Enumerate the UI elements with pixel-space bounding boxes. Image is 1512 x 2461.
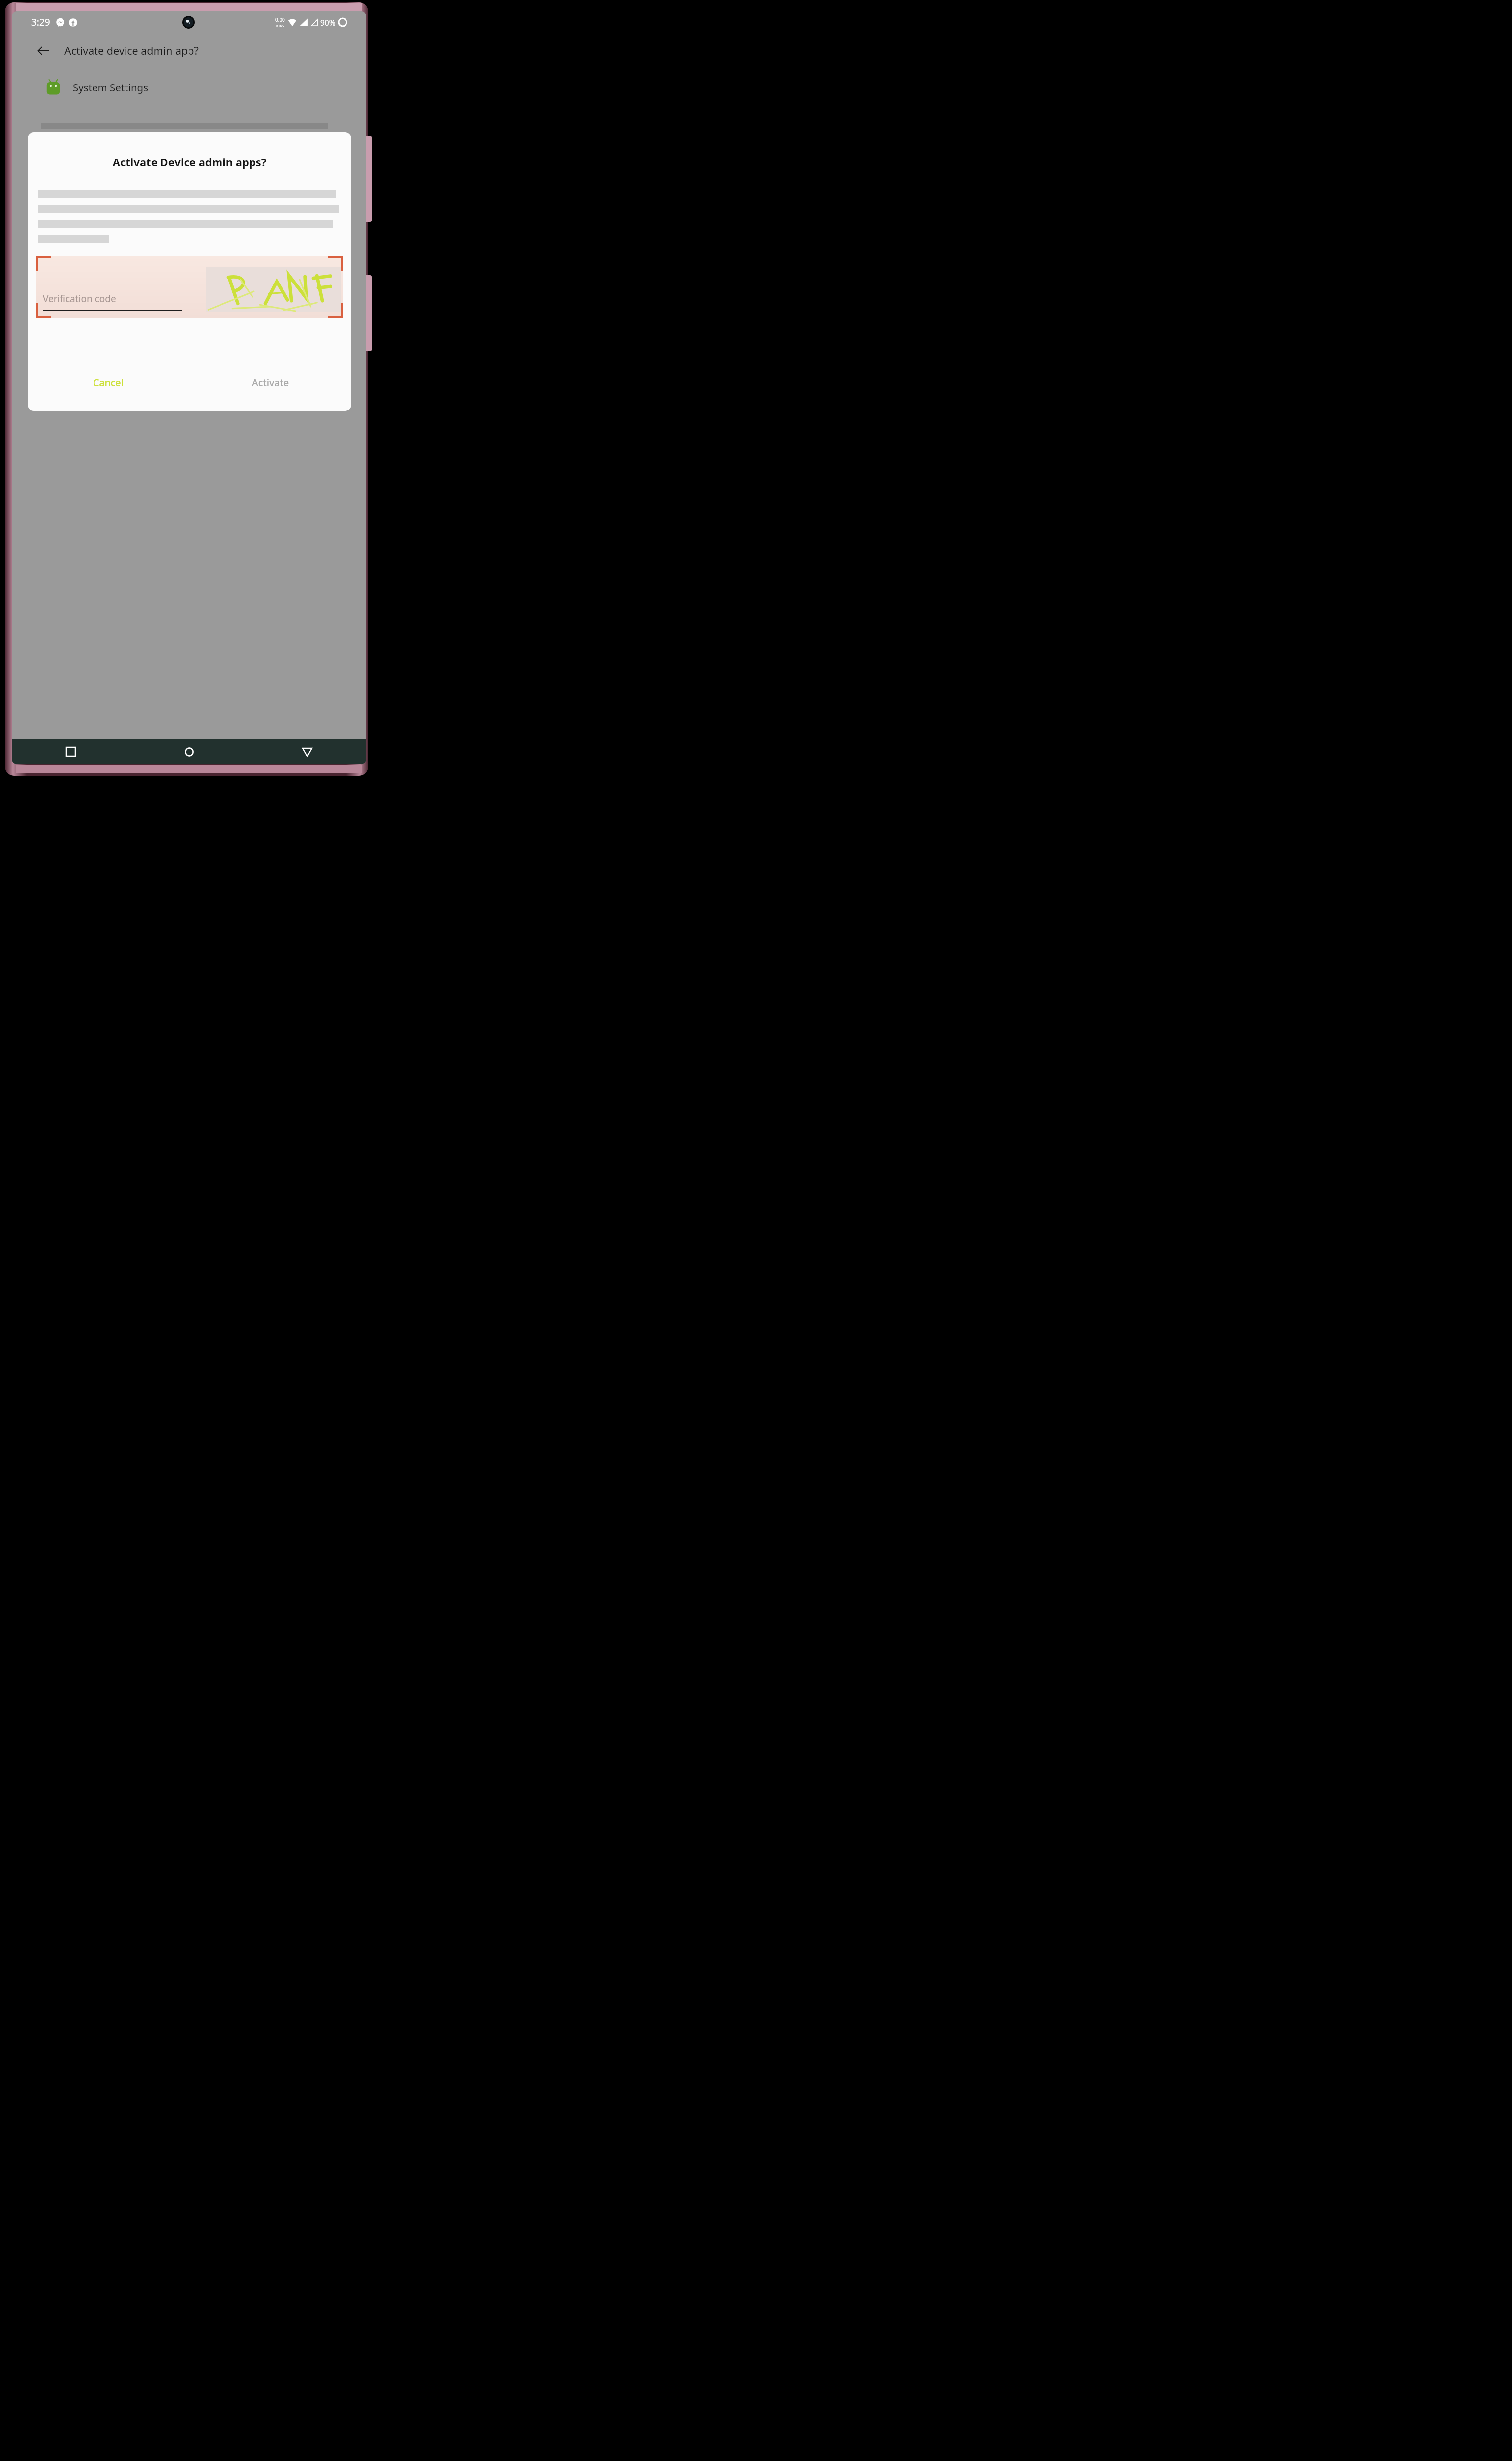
button[interactable]: System Settings <box>46 68 366 105</box>
staticText: Activate Device admin apps? <box>28 155 351 169</box>
staticText: Verification code <box>43 292 116 305</box>
staticText: 90% <box>320 17 336 28</box>
button[interactable]: Cancel <box>28 364 189 401</box>
button[interactable]: Activate <box>189 364 351 401</box>
button[interactable]: Verification code <box>43 292 188 311</box>
staticText: Activate device admin app? <box>64 43 199 58</box>
staticText: Activate <box>252 376 289 389</box>
button[interactable]: Back <box>34 41 53 60</box>
staticText: Activate <box>171 247 207 260</box>
staticText: 3:29 <box>31 16 50 29</box>
staticText: KB/S <box>276 23 284 28</box>
button[interactable]: Recents <box>12 739 130 764</box>
staticText: System Settings <box>73 80 148 94</box>
button[interactable]: Activate <box>88 239 290 267</box>
button[interactable]: Back <box>248 739 366 764</box>
button[interactable]: Home <box>130 739 248 764</box>
staticText: Cancel <box>93 376 124 389</box>
staticText: 0.00 <box>275 16 285 23</box>
